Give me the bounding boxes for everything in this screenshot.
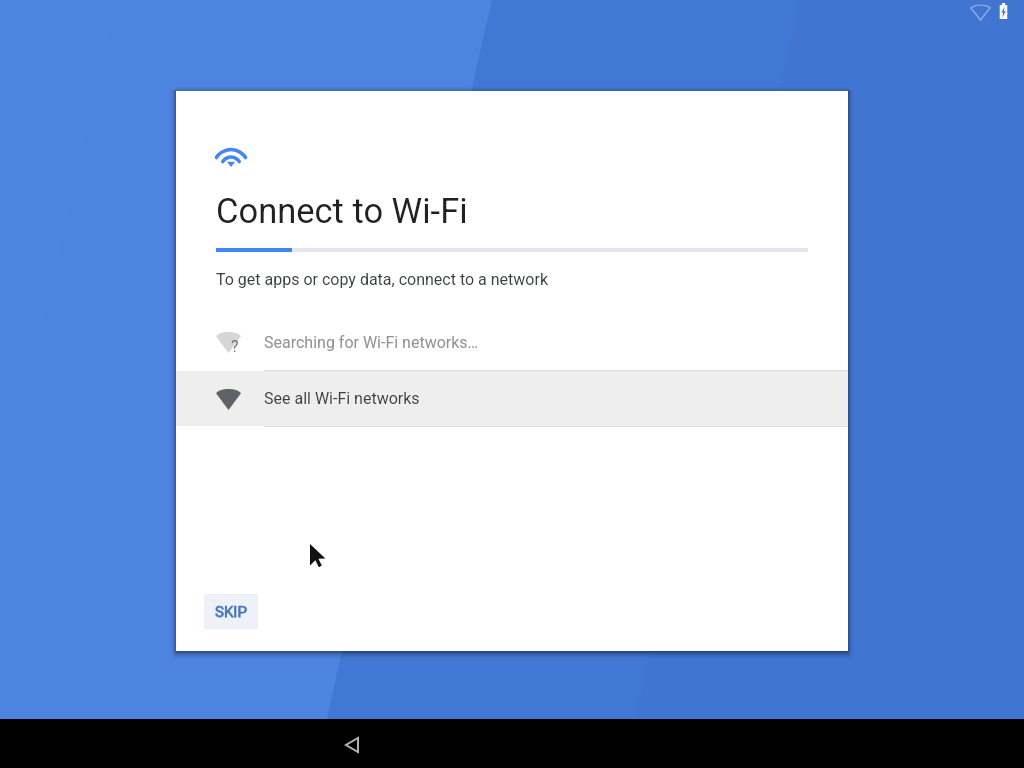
staticText: ?	[231, 337, 239, 356]
button[interactable]: See all Wi-Fi networks	[176, 371, 848, 426]
staticText: SKIP	[215, 603, 247, 621]
button[interactable]: Back	[328, 719, 376, 768]
button[interactable]: SKIP	[204, 594, 258, 629]
staticText: Connect to Wi-Fi	[216, 191, 468, 231]
staticText: To get apps or copy data, connect to a n…	[216, 270, 548, 289]
staticText: Searching for Wi-Fi networks…	[264, 333, 479, 352]
staticText: See all Wi-Fi networks	[264, 389, 420, 408]
staticText: SKIP	[215, 603, 247, 621]
button[interactable]: ?	[176, 314, 848, 371]
